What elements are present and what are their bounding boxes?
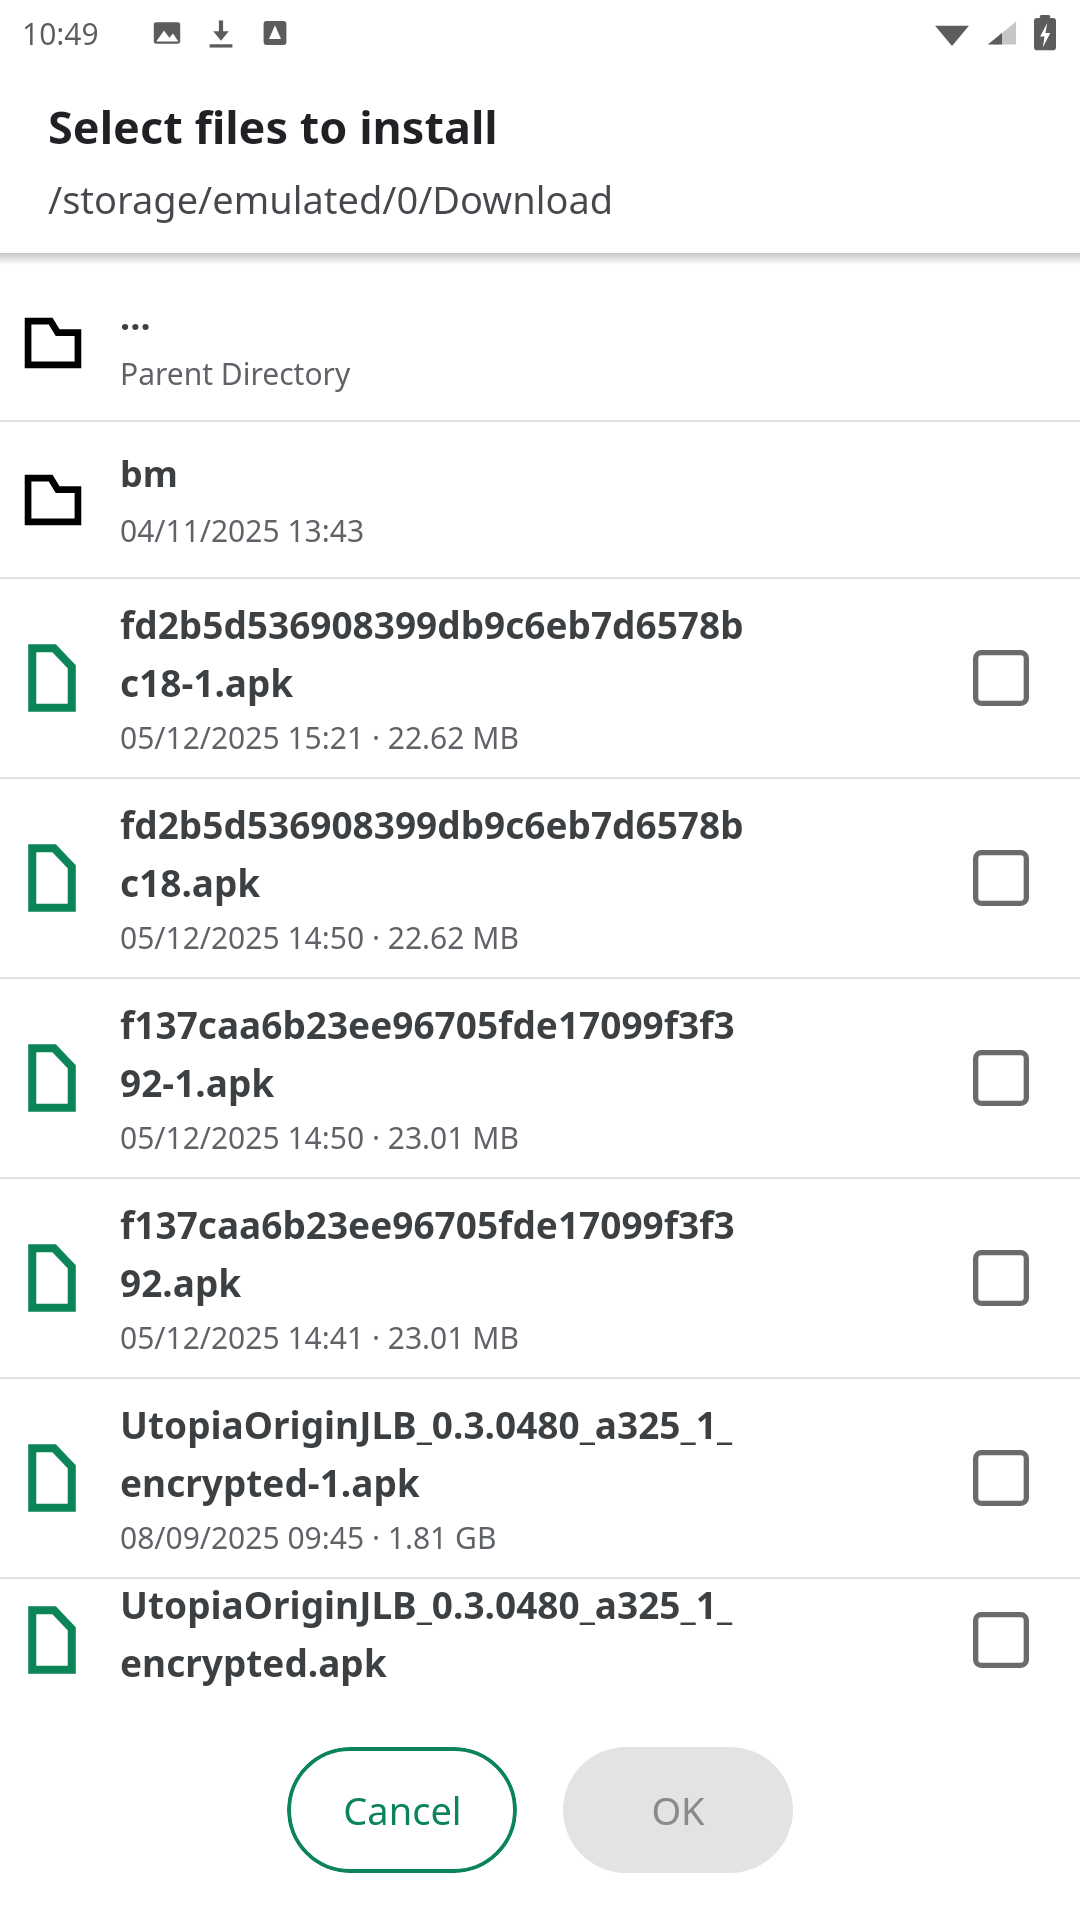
staticText: UtopiaOriginJLB_0.3.0480_a325_1_ encrypt… bbox=[120, 1579, 733, 1687]
staticText: bm bbox=[120, 449, 178, 498]
staticText: Parent Directory bbox=[120, 353, 351, 394]
button[interactable]: Select file bbox=[958, 835, 1044, 921]
staticText: 05/12/2025 14:50 · 23.01 MB bbox=[120, 1117, 519, 1158]
staticText: /storage/emulated/0/Download bbox=[48, 173, 614, 225]
button[interactable]: Select file bbox=[958, 635, 1044, 721]
staticText: fd2b5d536908399db9c6eb7d6578b c18-1.apk bbox=[120, 599, 744, 707]
staticText: 05/12/2025 14:50 · 22.62 MB bbox=[120, 917, 519, 958]
staticText: UtopiaOriginJLB_0.3.0480_a325_1_ encrypt… bbox=[120, 1399, 733, 1507]
button[interactable]: bm bbox=[0, 422, 1080, 579]
button[interactable]: fd2b5d536908399db9c6eb7d6578b c18.apk bbox=[0, 779, 1080, 979]
button[interactable]: Select file bbox=[958, 1435, 1044, 1521]
staticText: f137caa6b23ee96705fde17099f3f3 92-1.apk bbox=[120, 999, 735, 1107]
button[interactable]: Select file bbox=[958, 1235, 1044, 1321]
staticText: 05/12/2025 15:21 · 22.62 MB bbox=[120, 717, 519, 758]
button[interactable]: f137caa6b23ee96705fde17099f3f3 92.apk bbox=[0, 1179, 1080, 1379]
button[interactable]: UtopiaOriginJLB_0.3.0480_a325_1_ encrypt… bbox=[0, 1579, 1080, 1700]
button[interactable]: Select file bbox=[958, 1597, 1044, 1683]
staticText: Select files to install bbox=[48, 96, 498, 157]
staticText: 05/12/2025 14:41 · 23.01 MB bbox=[120, 1317, 519, 1358]
staticText: Cancel bbox=[343, 1784, 462, 1836]
button[interactable]: … bbox=[0, 265, 1080, 422]
button[interactable]: OK bbox=[563, 1747, 793, 1873]
button[interactable]: Cancel bbox=[287, 1747, 517, 1873]
staticText: 04/11/2025 13:43 bbox=[120, 510, 365, 551]
button[interactable]: UtopiaOriginJLB_0.3.0480_a325_1_ encrypt… bbox=[0, 1379, 1080, 1579]
button[interactable]: Select file bbox=[958, 1035, 1044, 1121]
staticText: 10:49 bbox=[22, 13, 99, 54]
staticText: 08/09/2025 09:45 · 1.81 GB bbox=[120, 1517, 497, 1558]
button[interactable]: f137caa6b23ee96705fde17099f3f3 92-1.apk bbox=[0, 979, 1080, 1179]
staticText: OK bbox=[651, 1784, 705, 1836]
staticText: … bbox=[120, 292, 151, 341]
button[interactable]: fd2b5d536908399db9c6eb7d6578b c18-1.apk bbox=[0, 579, 1080, 779]
staticText: fd2b5d536908399db9c6eb7d6578b c18.apk bbox=[120, 799, 744, 907]
staticText: f137caa6b23ee96705fde17099f3f3 92.apk bbox=[120, 1199, 735, 1307]
